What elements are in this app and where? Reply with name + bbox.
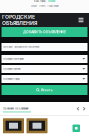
button[interactable]: Выберите город: [1, 75, 87, 83]
staticText: Выберите город: [3, 77, 20, 80]
staticText: Выберите категорию: [3, 57, 24, 60]
button[interactable]: ДОБАВИТЬ ОБЪЯВЛЕНИЕ: [1, 27, 87, 37]
staticText: ДОБАВИТЬ ОБЪЯВЛЕНИЕ: [23, 30, 66, 34]
staticText: Лента: [39, 4, 45, 7]
staticText: Продукция: [47, 4, 58, 7]
staticText: Категория: Программное обеспечение: [3, 46, 39, 48]
staticText: Москва: [48, 0, 55, 2]
button[interactable]: Next: [83, 107, 86, 111]
staticText: Премиум Объявления: [3, 107, 28, 110]
button[interactable]: Выберите регион: [1, 65, 87, 73]
staticText: Выберите регион: [3, 67, 20, 70]
button[interactable]: Contact: [72, 124, 80, 132]
button[interactable]: Menu: [78, 17, 84, 23]
button[interactable]: Previous: [76, 107, 79, 111]
staticText: Искать: [41, 88, 53, 92]
staticText: Ваш город:: [34, 0, 47, 2]
button[interactable]: Premium ad: [3, 118, 24, 133]
staticText: Доска: [31, 4, 37, 7]
button[interactable]: Искать: [1, 85, 87, 95]
button[interactable]: Premium ad: [26, 118, 47, 133]
button[interactable]: Выберите категорию: [1, 55, 87, 63]
staticText: ГОРОДСКИЕ ОБЪЯВЛЕНИЯ: [2, 14, 37, 26]
